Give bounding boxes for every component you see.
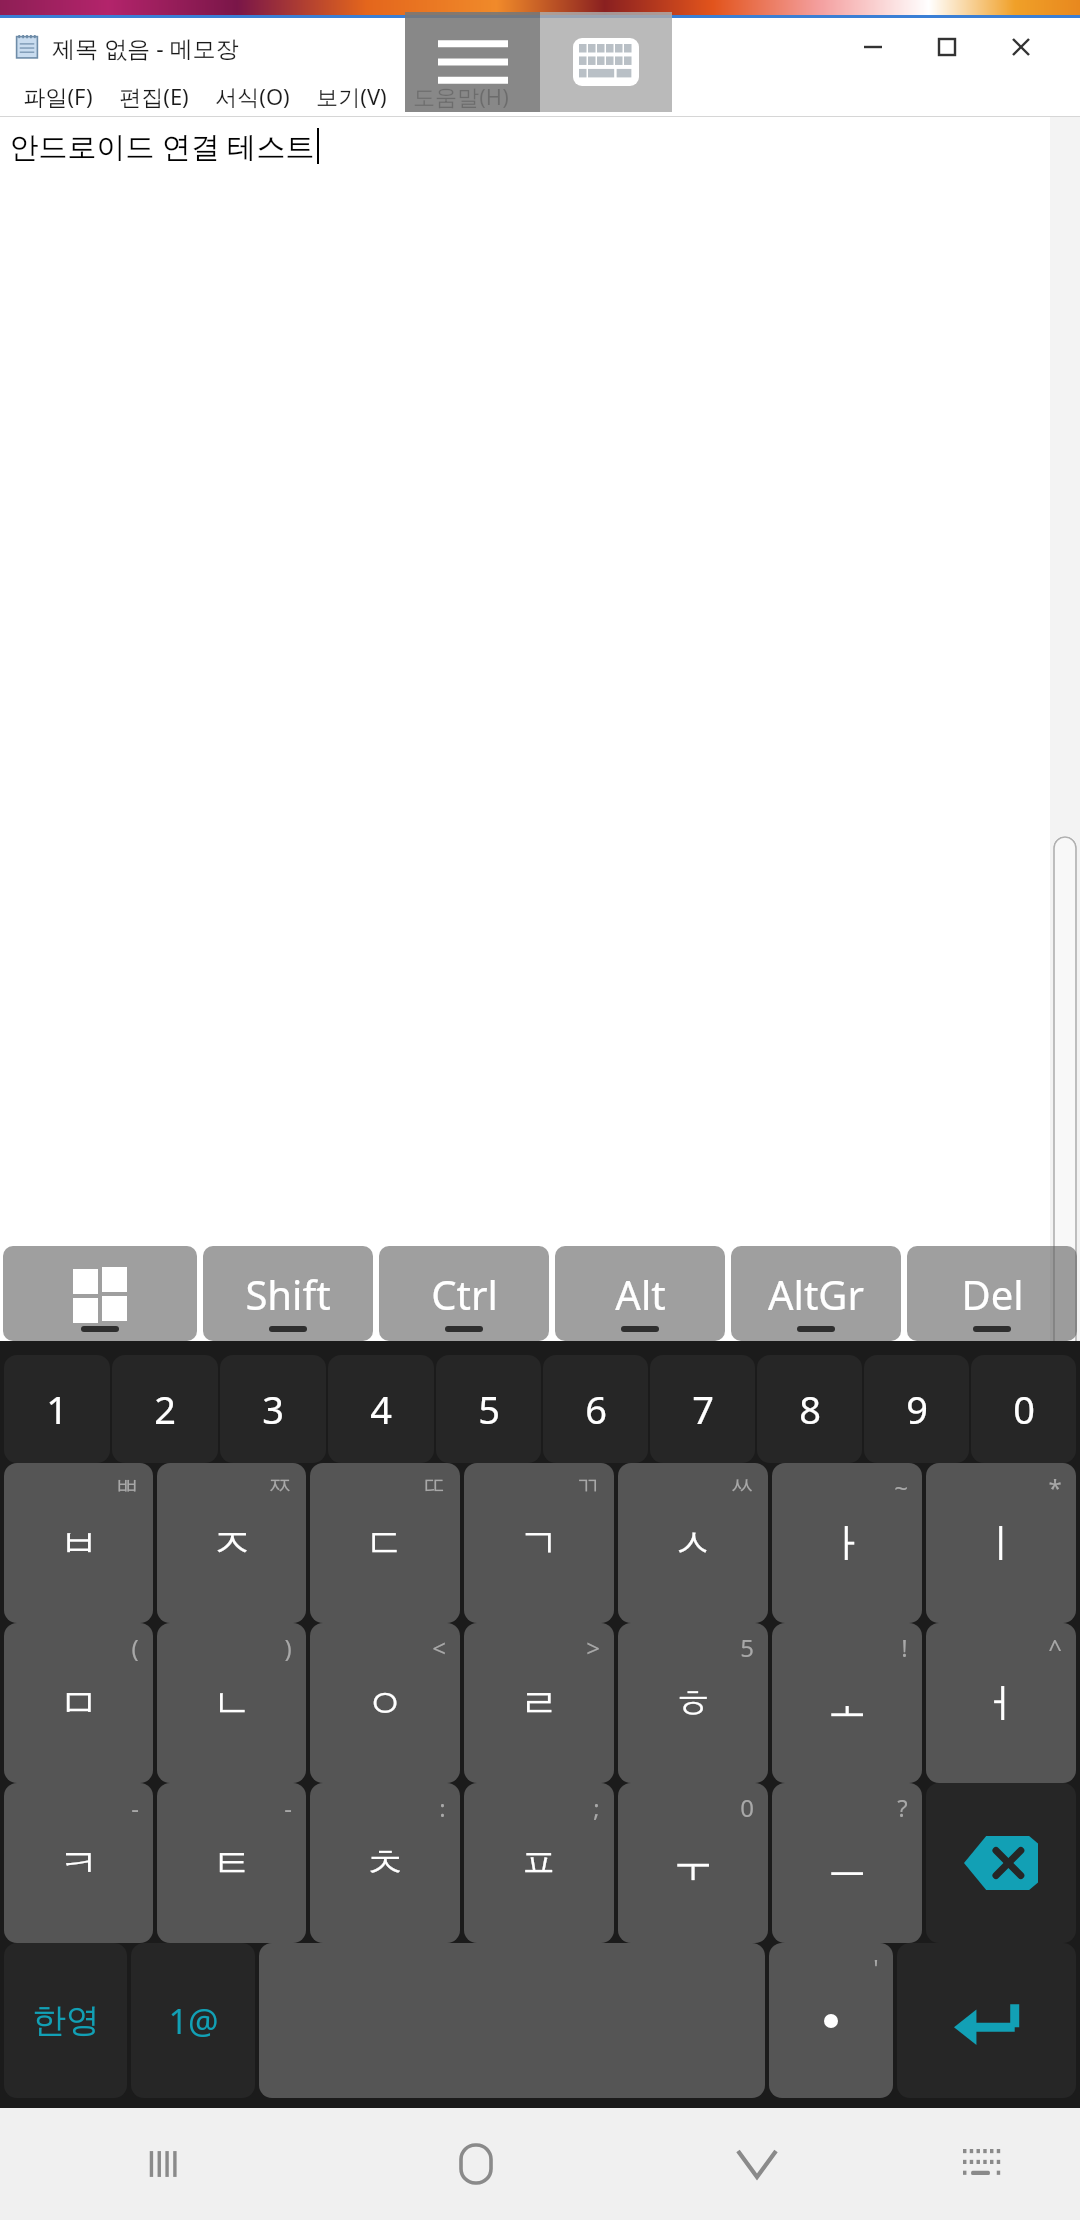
button[interactable]: ㅋ [4,1783,153,1943]
button[interactable]: 4 [328,1355,434,1463]
button[interactable]: Backspace [926,1783,1076,1943]
button[interactable]: ㄱ [464,1463,614,1623]
button[interactable]: ㅡ [772,1783,922,1943]
button[interactable]: ㅁ [4,1623,153,1783]
button[interactable]: 9 [864,1355,969,1463]
staticText: ㅏ [827,1518,867,1568]
button[interactable]: 8 [757,1355,862,1463]
staticText: 한영 [32,1999,100,2042]
button[interactable]: Del [907,1246,1077,1341]
staticText: Shift [245,1267,331,1321]
staticText: 편집(E) [119,81,189,111]
button[interactable]: 도움말(H) [400,77,522,115]
staticText: 0 [740,1791,754,1824]
button[interactable]: Maximize [910,18,984,76]
button[interactable]: Single session [182,2009,349,2038]
button[interactable]: 5 [436,1355,541,1463]
button[interactable]: ㅇ [310,1623,460,1783]
button[interactable]: Shift [203,1246,373,1341]
staticText: Ctrl [431,1267,498,1321]
button[interactable]: Disable Shadowing [674,2028,890,2057]
button[interactable]: Full access with user's permission [674,2065,1034,2094]
button[interactable]: Toggle keyboard [540,12,672,112]
button[interactable]: Scroll down [1050,1914,1080,1944]
button[interactable]: ' [769,1943,893,2098]
button[interactable]: Ctrl [379,1246,549,1341]
staticText: ㅃ [115,1471,139,1501]
button[interactable]: 편집(E) [106,77,202,115]
staticText: 3 [262,1383,284,1435]
staticText: ; [593,1791,600,1824]
staticText: > [586,1631,600,1664]
button[interactable]: Minimize [836,18,910,76]
staticText: ㅂ [59,1518,99,1568]
button[interactable]: Enter [897,1943,1076,2098]
button[interactable]: Menu [405,12,540,112]
button[interactable]: Windows key [3,1246,197,1341]
button[interactable]: 7 [650,1355,755,1463]
staticText: 5 [740,1631,754,1664]
staticText: Session Shadowing Mode [674,1991,926,2020]
button[interactable]: Network Level Authentication [674,1948,994,1977]
button[interactable]: ㅎ [618,1623,768,1783]
button[interactable]: 1 [4,1355,110,1463]
staticText: 9 [906,1383,928,1435]
button[interactable]: 1@ [131,1943,255,2098]
button[interactable]: ㅂ [4,1463,153,1623]
button[interactable]: ㅍ [464,1783,614,1943]
button[interactable]: ㅈ [157,1463,306,1623]
button[interactable]: 0 [971,1355,1076,1463]
button[interactable]: ㅜ [618,1783,768,1943]
staticText: ㄹ [519,1678,559,1728]
button[interactable]: ㅊ [310,1783,460,1943]
button[interactable]: 3 [220,1355,326,1463]
button[interactable]: Hide keyboard [886,2108,1080,2220]
button[interactable]: ㅗ [772,1623,922,1783]
button[interactable]: ㅓ [926,1623,1076,1783]
staticText: ㅎ [673,1678,713,1728]
button[interactable]: Back [627,2108,886,2220]
button[interactable]: 2 [112,1355,218,1463]
button[interactable]: 보기(V) [303,77,400,115]
button[interactable]: ㄴ [157,1623,306,1783]
staticText: Unity [30,2006,85,2036]
staticText: ㅆ [730,1471,754,1501]
staticText: ㅡ [827,1838,867,1888]
staticText: 도움말(H) [413,81,509,111]
button[interactable]: Allow to start custom programs [386,2069,664,2108]
staticText: Network Level Authentication [702,1948,994,1977]
staticText: ㅍ [519,1838,559,1888]
staticText: ㄷ [365,1518,405,1568]
staticText: ㅜ [673,1838,713,1888]
button[interactable]: ㅅ [618,1463,768,1623]
button[interactable]: Alt [555,1246,725,1341]
button[interactable]: ㅌ [157,1783,306,1943]
staticText: 4 [370,1383,392,1435]
button[interactable]: ㅣ [926,1463,1076,1623]
button[interactable]: ㄹ [464,1623,614,1783]
staticText: 서식(O) [215,81,290,111]
button[interactable]: 파일(F) [10,77,106,115]
staticText: ㅉ [268,1471,292,1501]
button[interactable]: ㄷ [310,1463,460,1623]
button[interactable]: ㅏ [772,1463,922,1623]
staticText: * [1048,1471,1062,1504]
button[interactable]: 서식(O) [202,77,303,115]
button[interactable]: AltGr [731,1246,901,1341]
button[interactable]: Home [325,2108,627,2220]
staticText: 1@ [168,1998,219,2044]
button[interactable]: 6 [543,1355,648,1463]
button[interactable]: 한영 [4,1943,127,2098]
staticText: ㄸ [422,1471,446,1501]
staticText: ㅋ [59,1838,99,1888]
button[interactable]: Close [984,18,1058,76]
staticText: 2 [154,1383,176,1435]
staticText: ( [131,1631,139,1664]
button[interactable]: Recent apps [0,2108,325,2220]
staticText: ^ [1048,1631,1062,1664]
